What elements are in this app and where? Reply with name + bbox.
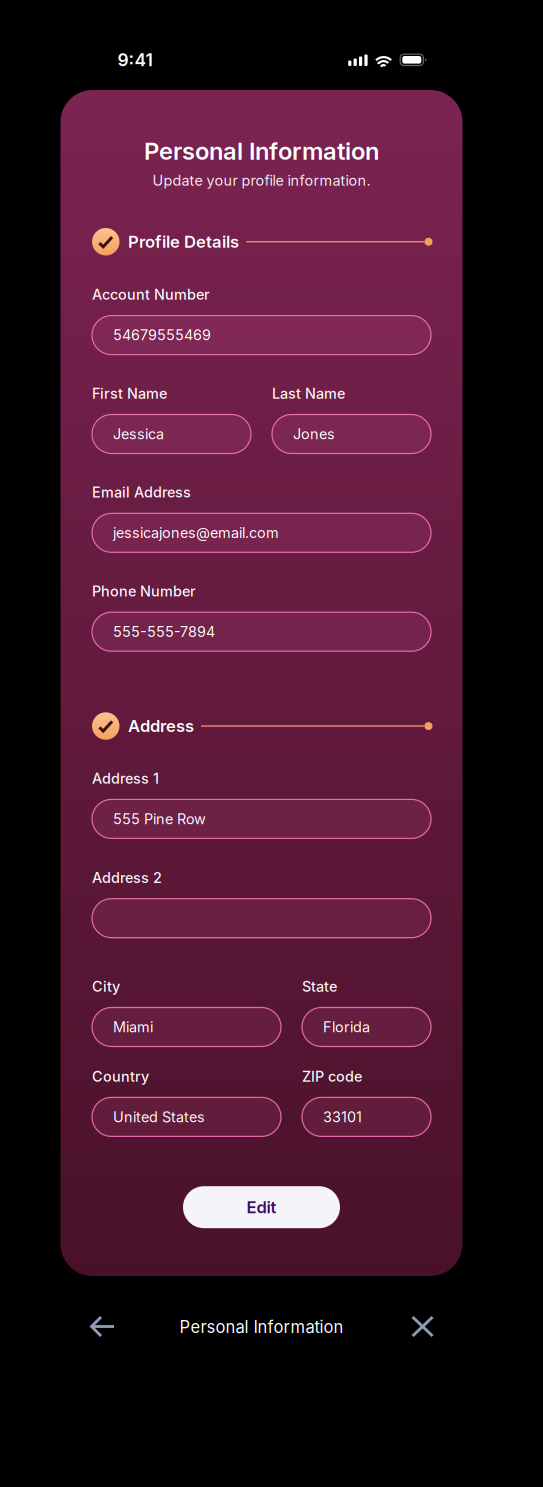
staticText: Phone Number [92, 582, 196, 600]
staticText: Miami [113, 1018, 153, 1036]
staticText: ZIP code [302, 1068, 362, 1085]
staticText: Last Name [272, 385, 345, 402]
staticText: Update your profile information. [152, 172, 370, 189]
button[interactable]: Miami [92, 1007, 281, 1046]
staticText: Address [128, 716, 194, 736]
staticText: State [302, 978, 337, 995]
staticText: Jones [293, 425, 335, 443]
button[interactable]: Close [401, 1305, 445, 1349]
staticText: jessicajones@email.com [113, 524, 279, 541]
staticText: City [92, 978, 120, 995]
staticText: 54679555469 [113, 326, 211, 344]
staticText: Country [92, 1068, 149, 1085]
button[interactable]: 54679555469 [92, 316, 431, 355]
button[interactable]: United States [92, 1097, 281, 1136]
staticText: Address 1 [92, 770, 159, 787]
button[interactable]: 33101 [302, 1097, 431, 1136]
staticText: Personal Information [144, 136, 379, 165]
staticText: Profile Details [128, 232, 239, 252]
staticText: United States [113, 1108, 205, 1126]
button[interactable]: 555 Pine Row [92, 799, 431, 838]
staticText: 555-555-7894 [113, 623, 215, 640]
button[interactable] [92, 899, 431, 938]
staticText: Email Address [92, 484, 191, 501]
staticText: Account Number [92, 286, 210, 303]
button[interactable]: Edit [183, 1186, 340, 1228]
staticText: Edit [246, 1197, 276, 1217]
button[interactable]: Florida [302, 1007, 431, 1046]
staticText: First Name [92, 385, 167, 402]
button[interactable]: 555-555-7894 [92, 612, 431, 651]
button[interactable]: Personal Information [141, 1305, 381, 1349]
button[interactable]: Back [80, 1305, 124, 1349]
staticText: 555 Pine Row [113, 810, 206, 828]
staticText: Jessica [113, 425, 164, 443]
button[interactable]: Jones [272, 414, 431, 453]
staticText: Address 2 [92, 869, 162, 886]
staticText: 33101 [323, 1108, 362, 1126]
staticText: Florida [323, 1018, 370, 1036]
button[interactable]: Jessica [92, 414, 251, 453]
button[interactable]: jessicajones@email.com [92, 513, 431, 552]
staticText: Personal Information [179, 1317, 343, 1337]
staticText: 9:41 [117, 49, 152, 71]
